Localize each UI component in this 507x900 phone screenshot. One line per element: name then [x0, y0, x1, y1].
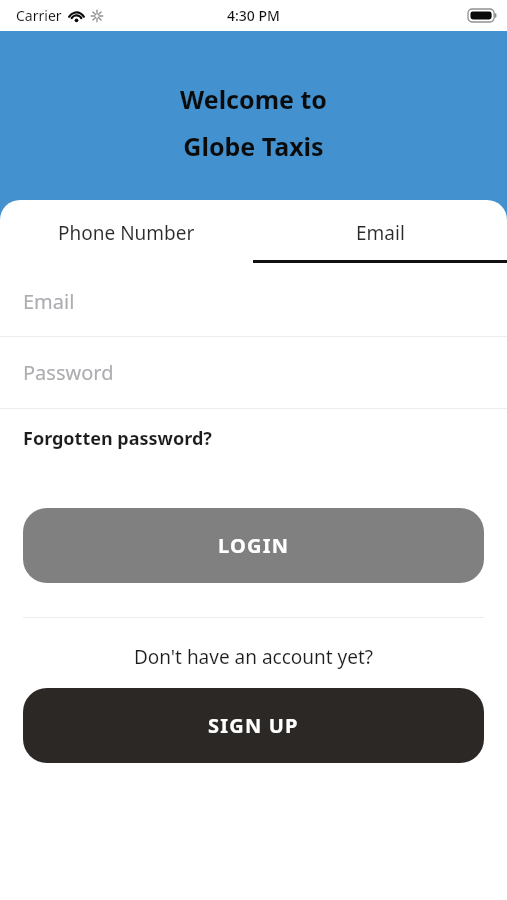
button[interactable]: Email [253, 200, 507, 266]
staticText: Password [23, 359, 114, 386]
staticText: Globe Taxis [183, 129, 324, 163]
staticText: Welcome to [180, 82, 327, 116]
staticText: LOGIN [218, 532, 290, 559]
button[interactable]: SIGN UP [23, 688, 484, 763]
staticText: Don't have an account yet? [0, 644, 507, 670]
button[interactable]: Forgotten password? [0, 409, 507, 467]
staticText: Email [23, 288, 75, 315]
button[interactable]: Password [0, 337, 507, 408]
button[interactable]: Phone Number [0, 200, 253, 266]
staticText: SIGN UP [208, 712, 299, 739]
staticText: 4:30 PM [227, 6, 280, 25]
staticText: Carrier [16, 6, 62, 25]
staticText: Email [356, 220, 405, 246]
button[interactable]: LOGIN [23, 508, 484, 583]
staticText: Forgotten password? [23, 426, 212, 451]
button[interactable]: Email [0, 266, 507, 336]
staticText: Phone Number [58, 220, 195, 246]
